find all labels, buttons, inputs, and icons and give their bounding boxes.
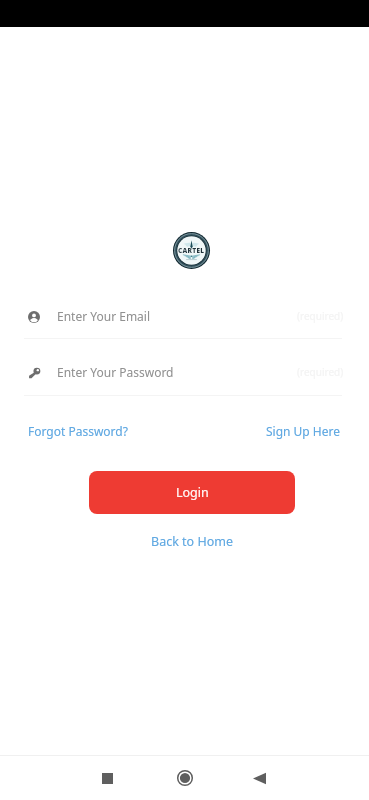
button[interactable]: Enter Your Password bbox=[24, 362, 342, 396]
button[interactable]: Back bbox=[236, 756, 282, 800]
staticText: Forgot Password? bbox=[28, 423, 128, 439]
staticText: Sign Up Here bbox=[266, 423, 341, 439]
button[interactable]: Forgot Password? bbox=[28, 423, 128, 439]
staticText: (required) bbox=[297, 365, 344, 379]
button[interactable]: Home bbox=[162, 756, 208, 800]
button[interactable]: Recent apps bbox=[84, 756, 130, 800]
button[interactable]: Back to Home bbox=[151, 533, 233, 550]
button[interactable]: Sign Up Here bbox=[266, 423, 341, 439]
staticText: CARTEL bbox=[178, 246, 205, 255]
staticText: Enter Your Password bbox=[57, 364, 174, 380]
staticText: (required) bbox=[297, 309, 344, 323]
staticText: Login bbox=[176, 484, 209, 501]
staticText: Enter Your Email bbox=[57, 308, 151, 324]
staticText: Back to Home bbox=[151, 533, 233, 550]
button[interactable]: Enter Your Email bbox=[24, 305, 342, 339]
button[interactable]: Login bbox=[89, 471, 295, 514]
